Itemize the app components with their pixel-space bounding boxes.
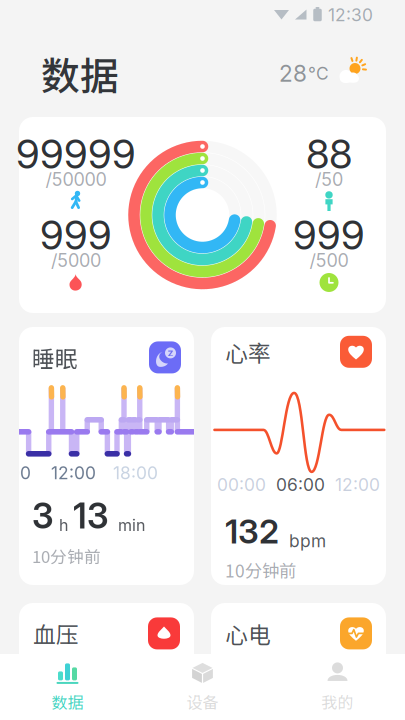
staticText: 99999 [16,130,136,178]
button[interactable]: 我的 [270,661,405,713]
staticText: 12:00 [335,474,380,495]
staticText: 3 [32,495,54,537]
staticText: 999 [40,211,112,259]
staticText: /500 [309,250,348,271]
staticText: °C [308,63,329,84]
button[interactable]: 设备 [135,661,270,713]
staticText: 12:00 [51,462,96,483]
staticText: 06:00 [0,462,31,483]
staticText: 设备 [186,690,218,713]
staticText: 88 [306,130,352,178]
staticText: 132 [225,511,279,551]
staticText: 血压 [33,617,79,650]
button[interactable]: 数据 [0,661,135,713]
staticText: 10分钟前 [225,557,296,583]
staticText: 10分钟前 [32,544,101,568]
staticText: 13 [73,495,109,537]
staticText: bpm [289,530,326,551]
staticText: 数据 [51,690,83,713]
staticText: min [118,515,145,535]
button[interactable]: 心率 [211,327,386,585]
staticText: z [167,346,173,359]
button[interactable]: 心电 [211,603,386,720]
staticText: 心电 [225,617,271,650]
staticText: 心率 [225,335,271,368]
staticText: 18:00 [113,462,158,483]
staticText: /50000 [45,169,106,190]
staticText: 00:00 [217,474,266,495]
staticText: /50 [315,169,343,190]
staticText: 06:00 [276,474,325,495]
staticText: z [167,346,173,359]
button[interactable]: 血压 [19,603,194,720]
staticText: 12:30 [328,4,373,25]
staticText: 我的 [321,690,353,713]
staticText: h [59,515,68,535]
staticText: 数据 [41,45,119,101]
staticText: 28 [279,60,307,87]
staticText: /5000 [51,250,101,271]
button[interactable]: 睡眠 [19,327,194,585]
staticText: 睡眠 [32,341,78,374]
staticText: 999 [293,211,365,259]
button[interactable]: 28 [279,60,364,87]
